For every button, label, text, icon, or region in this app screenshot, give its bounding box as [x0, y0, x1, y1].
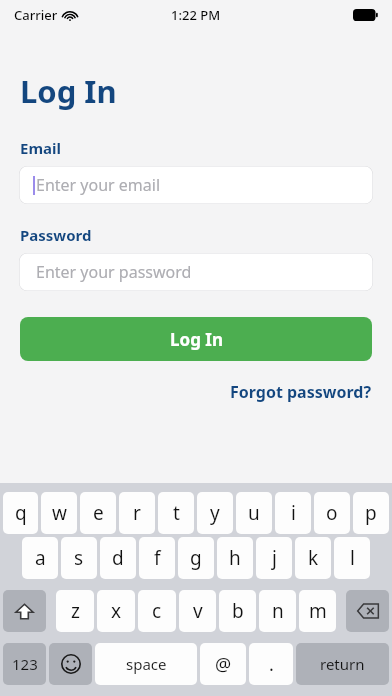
staticText: j	[272, 545, 277, 571]
button[interactable]: x	[97, 590, 135, 632]
button[interactable]: f	[139, 537, 175, 579]
button[interactable]: 123	[3, 643, 46, 685]
button[interactable]: m	[299, 590, 336, 632]
button[interactable]: v	[179, 590, 216, 632]
staticText: y	[210, 500, 220, 526]
staticText: return	[320, 654, 365, 674]
staticText: h	[229, 545, 241, 571]
button[interactable]: j	[256, 537, 292, 579]
button[interactable]: n	[259, 590, 296, 632]
staticText: z	[71, 598, 80, 624]
staticText: n	[272, 598, 284, 624]
button[interactable]: p	[353, 492, 389, 534]
staticText: a	[35, 545, 46, 571]
button[interactable]: s	[61, 537, 97, 579]
staticText: b	[232, 598, 244, 624]
button[interactable]: r	[119, 492, 155, 534]
staticText: t	[173, 500, 180, 526]
button[interactable]: o	[314, 492, 350, 534]
staticText: Enter your password	[36, 261, 192, 283]
staticText: v	[193, 598, 203, 624]
staticText: m	[309, 598, 327, 624]
button[interactable]: c	[138, 590, 176, 632]
staticText: f	[154, 545, 161, 571]
staticText: i	[291, 500, 296, 526]
button[interactable]: t	[158, 492, 194, 534]
button[interactable]: b	[219, 590, 256, 632]
staticText: k	[308, 545, 319, 571]
button[interactable]: y	[197, 492, 233, 534]
staticText: 1:22 PM	[171, 6, 221, 24]
staticText: u	[248, 500, 260, 526]
button[interactable]: z	[56, 590, 94, 632]
button[interactable]: Enter your password	[19, 253, 373, 291]
staticText: 123	[12, 654, 38, 674]
button[interactable]: d	[100, 537, 136, 579]
staticText: s	[74, 545, 84, 571]
staticText: @	[215, 652, 232, 677]
staticText: x	[111, 598, 122, 624]
staticText: Log In	[170, 328, 223, 351]
staticText: Enter your email	[36, 174, 161, 196]
staticText: o	[326, 500, 338, 526]
button[interactable]: l	[334, 537, 370, 579]
staticText: .	[269, 652, 274, 677]
button[interactable]: g	[178, 537, 214, 579]
button[interactable]: Backspace	[346, 590, 389, 632]
button[interactable]: w	[41, 492, 77, 534]
staticText: d	[112, 545, 124, 571]
staticText: Password	[20, 225, 92, 245]
button[interactable]: .	[249, 643, 293, 685]
staticText: w	[52, 500, 67, 526]
staticText: Email	[20, 138, 61, 158]
staticText: r	[133, 500, 141, 526]
staticText: space	[126, 654, 167, 674]
staticText: Log In	[20, 70, 117, 112]
button[interactable]: k	[295, 537, 331, 579]
staticText: g	[190, 545, 202, 571]
staticText: Forgot password?	[230, 381, 372, 403]
button[interactable]: Log In	[20, 317, 372, 361]
staticText: q	[15, 500, 27, 526]
staticText: p	[365, 500, 377, 526]
button[interactable]: h	[217, 537, 253, 579]
button[interactable]: e	[80, 492, 116, 534]
button[interactable]: Forgot password?	[210, 377, 392, 407]
button[interactable]: Shift	[3, 590, 46, 632]
staticText: l	[350, 545, 355, 571]
button[interactable]: return	[296, 643, 389, 685]
button[interactable]: i	[275, 492, 311, 534]
button[interactable]: u	[236, 492, 272, 534]
button[interactable]: @	[200, 643, 246, 685]
button[interactable]: space	[95, 643, 197, 685]
button[interactable]: a	[22, 537, 58, 579]
button[interactable]: Enter your email	[19, 166, 373, 204]
staticText: c	[152, 598, 162, 624]
button[interactable]: q	[3, 492, 38, 534]
staticText: e	[93, 500, 104, 526]
staticText: Carrier	[14, 6, 58, 24]
button[interactable]: Emoji	[49, 643, 92, 685]
